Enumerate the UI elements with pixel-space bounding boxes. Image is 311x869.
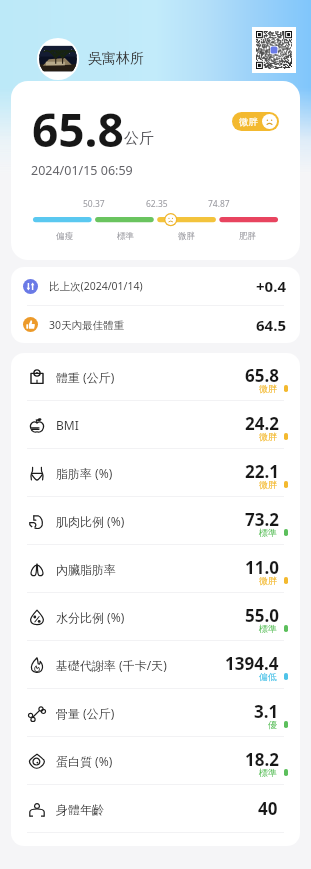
button[interactable]: 體重 (公斤) xyxy=(11,353,300,400)
staticText: 3.1 xyxy=(254,700,279,723)
button[interactable]: 吳寓林所 xyxy=(37,38,144,80)
staticText: 65.8 xyxy=(32,98,124,161)
staticText: 1394.4 xyxy=(225,652,279,675)
staticText: 73.2 xyxy=(245,508,279,531)
staticText: 優 xyxy=(268,719,277,730)
staticText: 2024/01/15 06:59 xyxy=(31,162,133,179)
staticText: 微胖 xyxy=(259,575,277,586)
staticText: 65.8 xyxy=(245,364,279,387)
button[interactable]: 微胖 xyxy=(239,112,277,131)
staticText: 微胖 xyxy=(259,479,277,490)
staticText: 肥胖 xyxy=(239,231,256,242)
button[interactable]: BMI xyxy=(11,401,300,448)
staticText: 標準 xyxy=(259,623,277,634)
button[interactable]: 比上次(2024/01/14) xyxy=(23,267,286,305)
staticText: 蛋白質 (%) xyxy=(56,753,113,769)
button[interactable]: 水分比例 (%) xyxy=(11,593,300,640)
staticText: 偏瘦 xyxy=(56,231,73,242)
staticText: 62.35 xyxy=(146,198,168,210)
staticText: 偏低 xyxy=(259,671,277,682)
staticText: 內臟脂肪率 xyxy=(56,562,116,577)
staticText: 水分比例 (%) xyxy=(56,609,125,625)
button[interactable]: 骨量 (公斤) xyxy=(11,689,300,736)
staticText: BMI xyxy=(56,417,79,433)
button[interactable]: 肌肉比例 (%) xyxy=(11,497,300,544)
staticText: 18.2 xyxy=(245,748,279,771)
staticText: 30天內最佳體重 xyxy=(49,318,125,332)
staticText: 微胖 xyxy=(259,383,277,394)
staticText: 微胖 xyxy=(178,231,195,242)
button[interactable]: 基礎代謝率 (千卡/天) xyxy=(11,641,300,688)
staticText: 標準 xyxy=(259,767,277,778)
staticText: 40 xyxy=(258,797,278,820)
staticText: 脂肪率 (%) xyxy=(56,465,113,481)
staticText: 64.5 xyxy=(256,315,286,335)
staticText: 體重 (公斤) xyxy=(56,369,115,385)
button[interactable]: 蛋白質 (%) xyxy=(11,737,300,784)
button[interactable]: QR code xyxy=(256,31,292,69)
staticText: 微胖 xyxy=(259,431,277,442)
button[interactable]: 內臟脂肪率 xyxy=(11,545,300,592)
staticText: 比上次(2024/01/14) xyxy=(49,279,143,293)
staticText: 11.0 xyxy=(245,556,279,579)
staticText: 基礎代謝率 (千卡/天) xyxy=(56,657,167,673)
button[interactable]: 30天內最佳體重 xyxy=(23,306,286,343)
staticText: 肌肉比例 (%) xyxy=(56,513,125,529)
staticText: 標準 xyxy=(117,231,134,242)
staticText: 50.37 xyxy=(83,198,105,210)
staticText: 22.1 xyxy=(245,460,279,483)
staticText: 公斤 xyxy=(124,129,154,148)
staticText: 吳寓林所 xyxy=(88,50,144,68)
button[interactable]: 身體年齡 xyxy=(11,785,300,832)
staticText: 55.0 xyxy=(245,604,279,627)
staticText: 74.87 xyxy=(208,198,230,210)
button[interactable]: 脂肪率 (%) xyxy=(11,449,300,496)
staticText: 24.2 xyxy=(245,412,279,435)
staticText: 骨量 (公斤) xyxy=(56,705,115,721)
staticText: 身體年齡 xyxy=(56,802,104,817)
staticText: 微胖 xyxy=(239,116,258,128)
staticText: +0.4 xyxy=(256,276,286,296)
staticText: 標準 xyxy=(259,527,277,538)
